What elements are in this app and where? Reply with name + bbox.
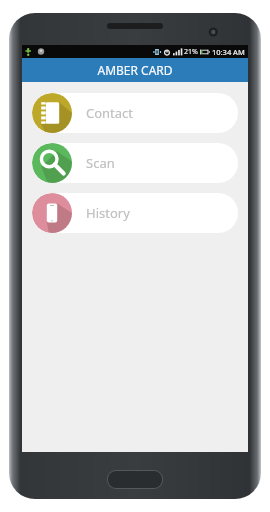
staticText: Scan (86, 154, 115, 172)
staticText: AMBER CARD (97, 62, 173, 78)
button[interactable]: Contact (32, 93, 238, 133)
staticText: 10:34 AM (212, 47, 245, 57)
staticText: 21% (184, 47, 198, 57)
staticText: Contact (86, 104, 134, 122)
button[interactable]: Home (108, 471, 162, 488)
button[interactable]: Scan (32, 143, 238, 183)
button[interactable]: History (32, 193, 238, 233)
staticText: History (86, 204, 130, 222)
